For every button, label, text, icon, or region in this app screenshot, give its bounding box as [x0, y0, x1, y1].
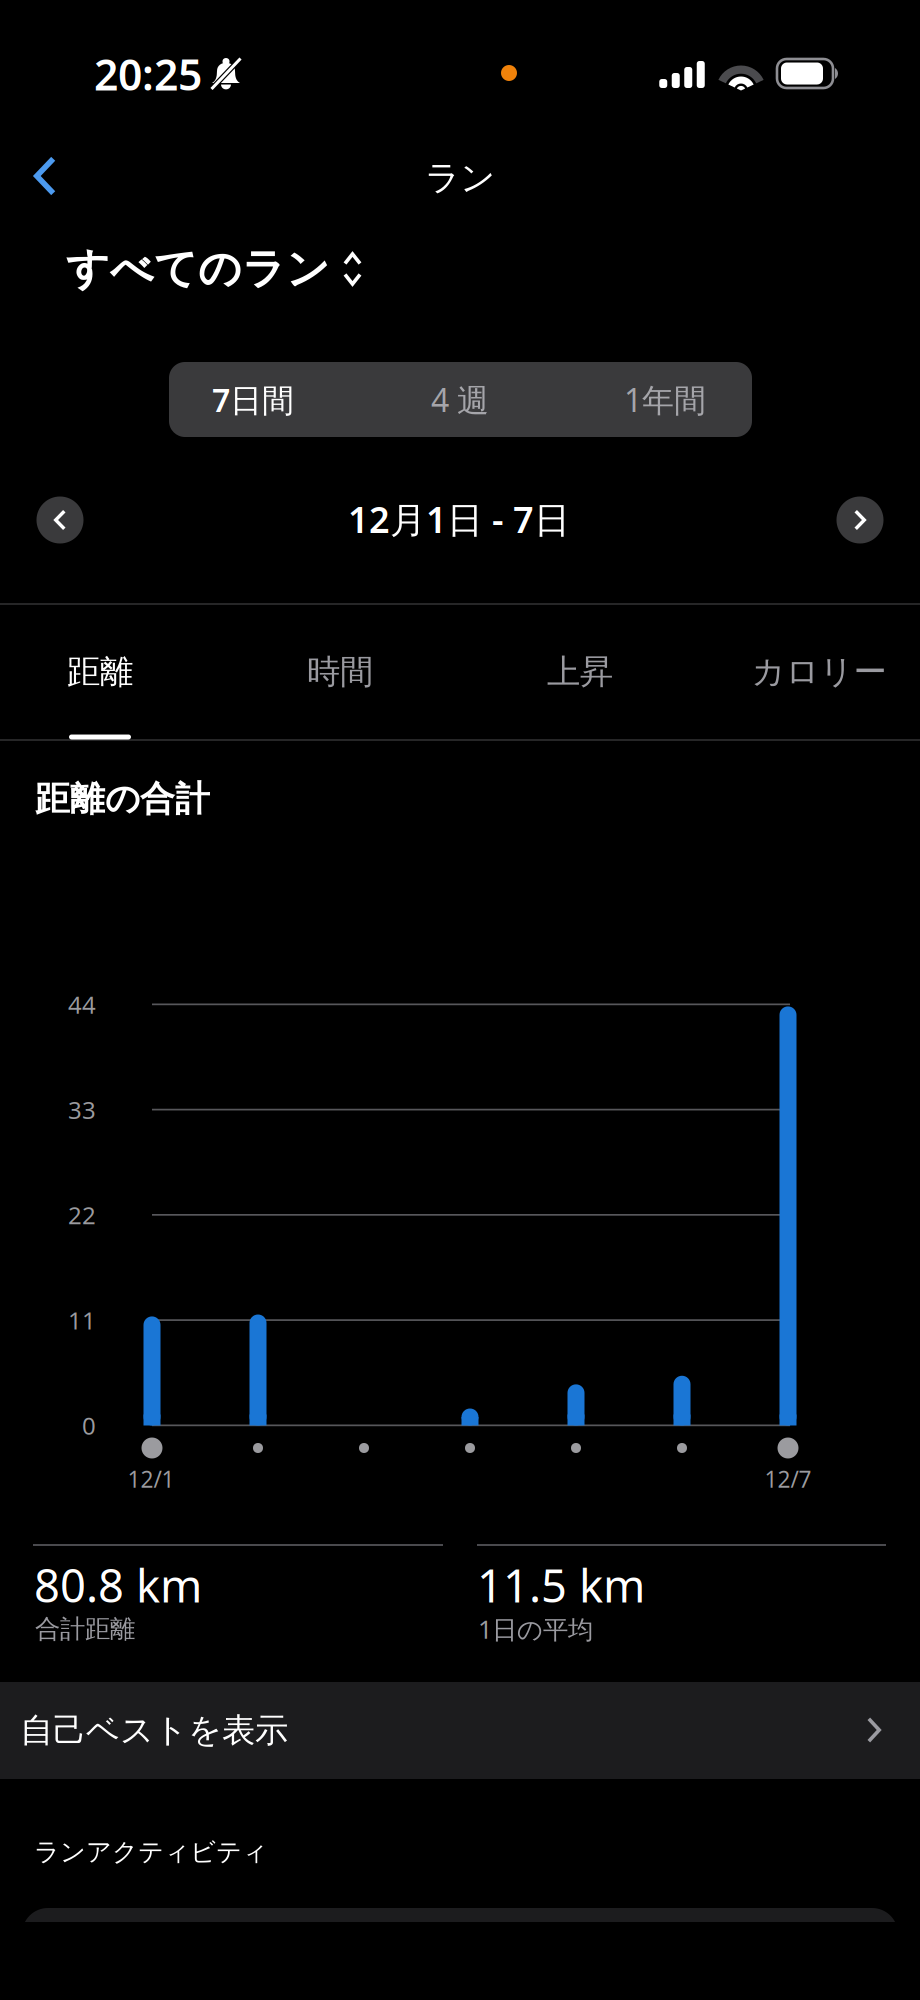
staticText: 11.5 km: [477, 1555, 645, 1615]
button[interactable]: 1年間: [570, 362, 760, 437]
staticText: すべてのラン: [66, 243, 330, 295]
staticText: 80.8 km: [34, 1555, 202, 1615]
staticText: カロリー: [751, 651, 886, 692]
staticText: 1日の平均: [478, 1612, 593, 1646]
staticText: 時間: [307, 651, 373, 692]
staticText: ラン: [425, 157, 495, 199]
staticText: 距離: [67, 651, 133, 692]
staticText: 0: [82, 1410, 96, 1441]
button[interactable]: 距離: [0, 604, 220, 740]
staticText: 4 週: [431, 378, 489, 421]
button[interactable]: 7日間: [158, 362, 348, 437]
button[interactable]: 上昇: [460, 604, 700, 740]
button[interactable]: 自己ベストを表示: [0, 1682, 920, 1779]
button[interactable]: 時間: [220, 604, 460, 740]
staticText: 12/1: [127, 1464, 174, 1494]
staticText: 上昇: [547, 651, 613, 692]
staticText: 1年間: [624, 378, 706, 421]
staticText: 22: [68, 1199, 96, 1231]
button[interactable]: Previous period: [29, 489, 91, 551]
staticText: 12月1日 - 7日: [348, 495, 570, 543]
staticText: 距離の合計: [35, 778, 210, 820]
staticText: 33: [68, 1094, 96, 1126]
staticText: 12/7: [764, 1464, 811, 1494]
staticText: 20:25: [94, 46, 202, 102]
staticText: 44: [68, 989, 96, 1020]
button[interactable]: Next period: [829, 489, 891, 551]
button[interactable]: カロリー: [699, 604, 920, 740]
button[interactable]: 4 週: [365, 362, 555, 437]
staticText: 11: [68, 1304, 96, 1336]
staticText: 7日間: [212, 378, 294, 421]
staticText: ランアクティビティ: [34, 1836, 268, 1867]
button[interactable]: Back: [10, 139, 80, 213]
staticText: 合計距離: [35, 1613, 135, 1644]
staticText: 自己ベストを表示: [20, 1710, 288, 1751]
button[interactable]: すべてのラン: [63, 238, 365, 300]
